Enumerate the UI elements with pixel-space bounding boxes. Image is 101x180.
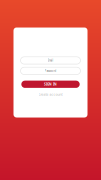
staticText: Email bbox=[47, 59, 53, 62]
button[interactable]: Create account bbox=[38, 92, 62, 97]
button[interactable]: Email bbox=[20, 57, 80, 64]
staticText: Create account bbox=[38, 92, 62, 97]
staticText: Password bbox=[44, 69, 56, 73]
button[interactable]: Password bbox=[20, 67, 80, 74]
button[interactable]: SIGN IN bbox=[21, 81, 80, 88]
staticText: SIGN IN bbox=[44, 82, 57, 86]
